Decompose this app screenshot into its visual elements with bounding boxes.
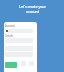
staticText: account (26, 9, 39, 14)
button[interactable] (5, 62, 17, 68)
staticText: Account (5, 24, 15, 28)
staticText: Details (5, 34, 14, 38)
staticText: Let's create your (19, 4, 46, 9)
